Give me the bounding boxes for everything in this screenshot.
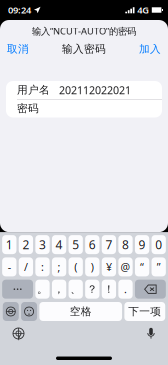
- button[interactable]: 5: [69, 235, 83, 254]
- button[interactable]: Change keyboard: [8, 323, 29, 344]
- staticText: 下一项: [128, 305, 161, 318]
- staticText: @: [120, 260, 130, 274]
- button[interactable]: ;: [52, 257, 66, 276]
- button[interactable]: 、: [69, 280, 83, 299]
- button[interactable]: ”: [151, 257, 166, 276]
- button[interactable]: /: [19, 257, 33, 276]
- staticText: 4G: [137, 4, 149, 16]
- button[interactable]: 9: [135, 235, 149, 254]
- button[interactable]: 取消: [4, 37, 32, 60]
- button[interactable]: ，: [52, 280, 66, 299]
- button[interactable]: 用户名: [6, 81, 162, 99]
- button[interactable]: ！: [102, 280, 116, 299]
- button[interactable]: Next keyboard: [3, 302, 19, 321]
- staticText: 1: [6, 237, 13, 252]
- button[interactable]: 0: [151, 235, 166, 254]
- staticText: ，: [54, 283, 65, 296]
- button[interactable]: “: [135, 257, 149, 276]
- staticText: 。: [37, 283, 48, 296]
- staticText: “: [140, 260, 144, 274]
- staticText: 输入密码: [62, 42, 106, 55]
- button[interactable]: 6: [85, 235, 99, 254]
- staticText: .: [124, 282, 127, 296]
- button[interactable]: 1: [2, 235, 16, 254]
- button[interactable]: -: [2, 257, 16, 276]
- button[interactable]: ？: [85, 280, 99, 299]
- button[interactable]: :: [35, 257, 50, 276]
- button[interactable]: 3: [35, 235, 50, 254]
- staticText: 取消: [7, 42, 29, 55]
- button[interactable]: 加入: [136, 37, 164, 60]
- staticText: ): [91, 260, 94, 274]
- staticText: 09:24: [8, 4, 31, 16]
- button[interactable]: 密码: [6, 99, 162, 117]
- staticText: 5: [72, 237, 79, 252]
- staticText: 6: [89, 237, 96, 252]
- staticText: ？: [87, 283, 98, 296]
- staticText: /: [24, 260, 28, 274]
- staticText: 、: [70, 283, 81, 296]
- staticText: 8: [122, 237, 129, 252]
- staticText: 0: [155, 237, 162, 252]
- staticText: 7: [105, 237, 112, 252]
- staticText: 空格: [70, 305, 92, 318]
- staticText: ;: [58, 260, 61, 274]
- button[interactable]: @: [118, 257, 133, 276]
- staticText: ”: [157, 260, 161, 274]
- button[interactable]: ): [85, 257, 99, 276]
- staticText: 9: [139, 237, 146, 252]
- staticText: 4: [56, 237, 63, 252]
- staticText: :: [41, 260, 44, 274]
- button[interactable]: 8: [118, 235, 133, 254]
- button[interactable]: .: [118, 280, 133, 299]
- button[interactable]: 7: [102, 235, 116, 254]
- staticText: (: [74, 260, 77, 274]
- staticText: -: [8, 260, 11, 274]
- button[interactable]: Emoji: [21, 302, 37, 321]
- button[interactable]: Delete: [135, 280, 166, 299]
- staticText: 2: [22, 237, 29, 252]
- staticText: ¥: [106, 260, 112, 274]
- staticText: 输入“NCUT-AUTO”的密码: [32, 25, 136, 37]
- staticText: 202112022021: [59, 83, 131, 97]
- button[interactable]: 空格: [39, 302, 122, 321]
- button[interactable]: Dictation: [142, 323, 160, 344]
- button[interactable]: 2: [19, 235, 33, 254]
- staticText: 密码: [17, 102, 39, 115]
- button[interactable]: 下一项: [124, 302, 165, 321]
- staticText: ！: [103, 283, 114, 296]
- button[interactable]: 。: [35, 280, 50, 299]
- button[interactable]: 4: [52, 235, 66, 254]
- staticText: 用户名: [17, 83, 50, 96]
- staticText: 3: [39, 237, 46, 252]
- button[interactable]: More symbols: [2, 280, 33, 299]
- staticText: 加入: [139, 42, 161, 55]
- button[interactable]: ¥: [102, 257, 116, 276]
- button[interactable]: (: [69, 257, 83, 276]
